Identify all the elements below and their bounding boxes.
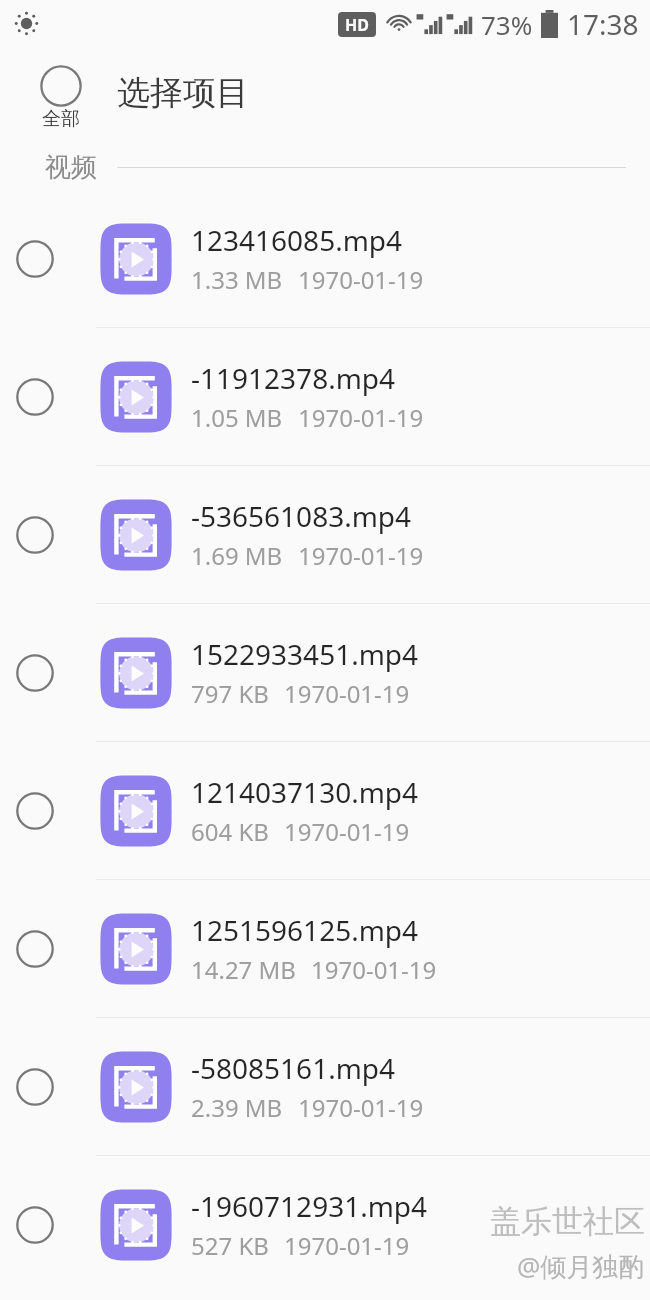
staticText: 1970-01-19: [298, 263, 424, 296]
staticText: 1970-01-19: [284, 815, 410, 848]
staticText: 1214037130.mp4: [191, 773, 419, 811]
staticText: 1251596125.mp4: [191, 911, 419, 949]
staticText: 1.05 MB: [191, 401, 283, 434]
staticText: 全部: [42, 107, 80, 131]
staticText: 1.33 MB: [191, 263, 283, 296]
staticText: 1522933451.mp4: [191, 635, 419, 673]
staticText: 2.39 MB: [191, 1091, 283, 1124]
button[interactable]: 1522933451.mp4: [0, 604, 650, 741]
staticText: 604 KB: [191, 815, 269, 848]
staticText: 17:38: [567, 5, 639, 43]
staticText: 1970-01-19: [298, 401, 424, 434]
staticText: 527 KB: [191, 1229, 269, 1262]
staticText: -536561083.mp4: [191, 497, 412, 535]
staticText: 视频: [45, 151, 97, 184]
staticText: 1970-01-19: [311, 953, 437, 986]
button[interactable]: 123416085.mp4: [0, 190, 650, 327]
staticText: -1960712931.mp4: [191, 1187, 428, 1225]
button[interactable]: 1214037130.mp4: [0, 742, 650, 879]
staticText: -11912378.mp4: [191, 359, 396, 397]
button[interactable]: -536561083.mp4: [0, 466, 650, 603]
staticText: 1970-01-19: [298, 539, 424, 572]
staticText: 73%: [481, 7, 533, 42]
staticText: 1970-01-19: [284, 677, 410, 710]
staticText: 797 KB: [191, 677, 269, 710]
staticText: 1.69 MB: [191, 539, 283, 572]
button[interactable]: -58085161.mp4: [0, 1018, 650, 1155]
staticText: 1970-01-19: [298, 1091, 424, 1124]
staticText: 选择项目: [117, 72, 249, 114]
button[interactable]: 全部 select all: [36, 65, 86, 131]
button[interactable]: 1251596125.mp4: [0, 880, 650, 1017]
staticText: 123416085.mp4: [191, 221, 403, 259]
staticText: -58085161.mp4: [191, 1049, 396, 1087]
button[interactable]: -11912378.mp4: [0, 328, 650, 465]
button[interactable]: -1960712931.mp4: [0, 1156, 650, 1293]
staticText: @倾月独酌: [517, 1248, 645, 1284]
staticText: 盖乐世社区: [490, 1202, 645, 1241]
staticText: 14.27 MB: [191, 953, 296, 986]
staticText: 1970-01-19: [284, 1229, 410, 1262]
staticText: HD: [345, 14, 369, 36]
